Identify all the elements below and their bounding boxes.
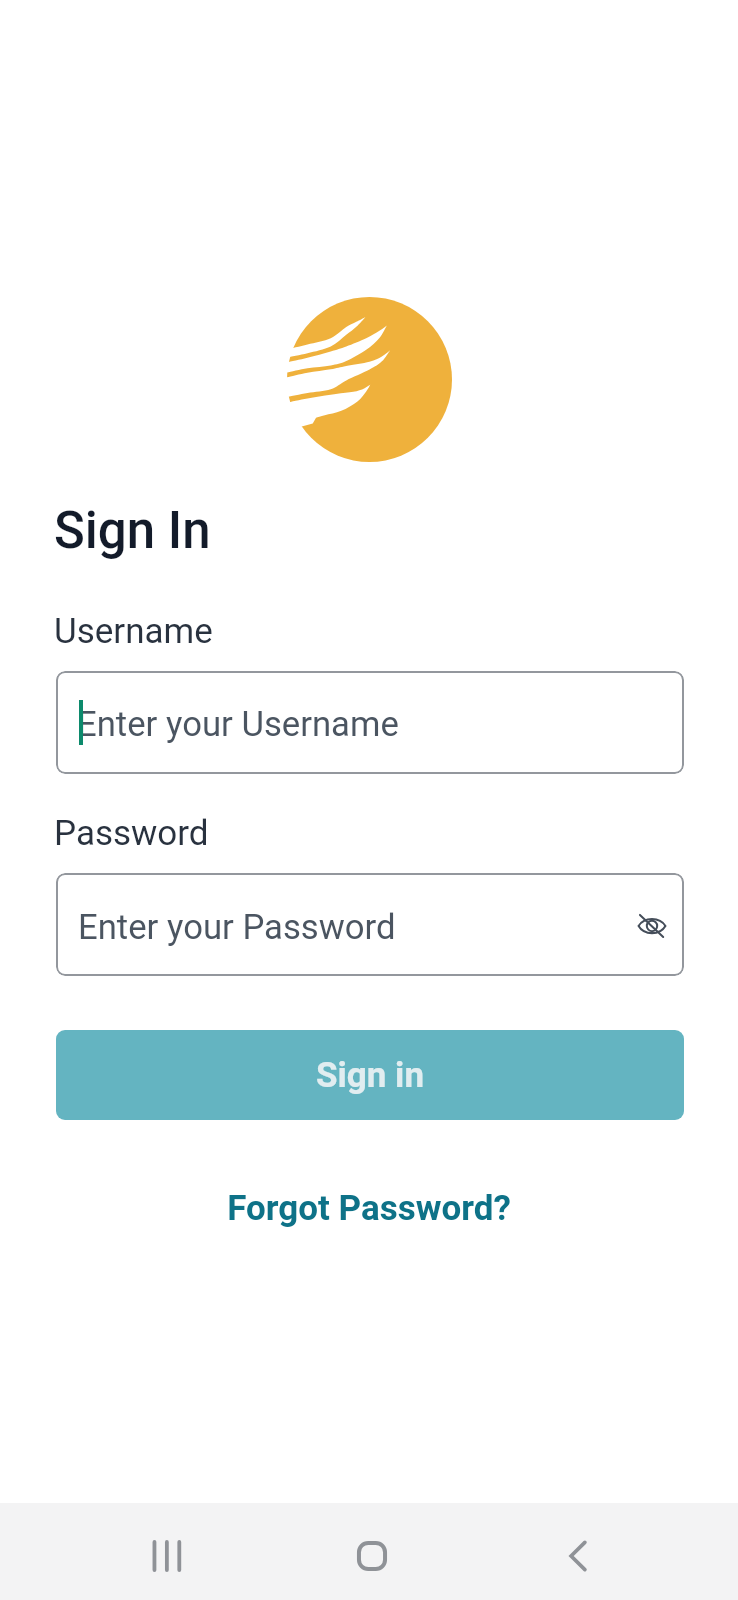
button[interactable]: Back: [530, 1508, 626, 1600]
button[interactable]: Recents: [117, 1508, 213, 1600]
staticText: Username: [54, 611, 213, 652]
staticText: Password: [54, 813, 209, 854]
staticText: Forgot Password?: [227, 1188, 511, 1229]
button[interactable]: Sign in: [56, 1030, 684, 1120]
button[interactable]: Username input: [56, 671, 684, 774]
button[interactable]: Show password: [622, 895, 682, 955]
staticText: Sign In: [54, 501, 211, 561]
button[interactable]: Password input: [56, 873, 684, 976]
staticText: Enter your Username: [77, 704, 399, 745]
button[interactable]: Forgot Password?: [213, 1182, 525, 1235]
staticText: Enter your Password: [78, 907, 396, 948]
staticText: Sign in: [316, 1055, 424, 1096]
button[interactable]: Home: [324, 1508, 420, 1600]
